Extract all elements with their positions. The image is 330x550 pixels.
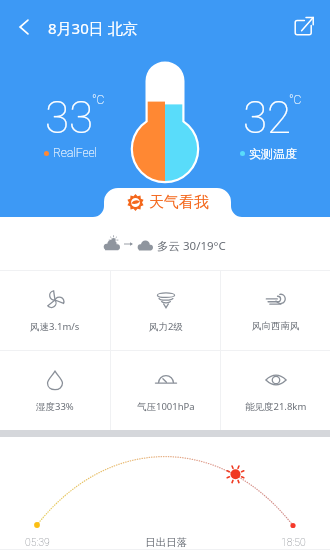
staticText: °C: [289, 93, 302, 107]
button[interactable]: 气压1001hPa: [111, 351, 220, 430]
button[interactable]: 能见度21.8km: [221, 351, 330, 430]
staticText: 风速3.1m/s: [30, 320, 80, 333]
button[interactable]: 风向西南风: [221, 271, 330, 350]
staticText: 日出日落: [145, 536, 187, 549]
staticText: 湿度33%: [36, 400, 74, 413]
button[interactable]: 风速3.1m/s: [0, 271, 110, 350]
staticText: 05:39: [25, 536, 50, 548]
staticText: 多云 30/19°C: [157, 238, 226, 254]
staticText: 能见度21.8km: [245, 400, 307, 413]
staticText: 33: [45, 92, 94, 144]
staticText: 风力2级: [149, 320, 183, 333]
staticText: °C: [92, 93, 105, 107]
staticText: RealFeel: [53, 146, 98, 160]
staticText: 18:50: [281, 536, 306, 548]
button[interactable]: 天气看我: [104, 188, 231, 217]
staticText: 32: [243, 92, 292, 144]
staticText: 风向西南风: [252, 320, 300, 332]
button[interactable]: 05:39: [0, 437, 330, 550]
button[interactable]: 风力2级: [111, 271, 220, 350]
button[interactable]: 多云 30/19°C: [0, 217, 330, 270]
staticText: 实测温度: [249, 146, 297, 161]
button[interactable]: Back: [4, 7, 44, 47]
button[interactable]: 湿度33%: [0, 351, 110, 430]
staticText: 天气看我: [149, 193, 209, 212]
staticText: 气压1001hPa: [137, 400, 195, 413]
staticText: 8月30日 北京: [48, 18, 138, 38]
button[interactable]: Share: [287, 9, 321, 43]
